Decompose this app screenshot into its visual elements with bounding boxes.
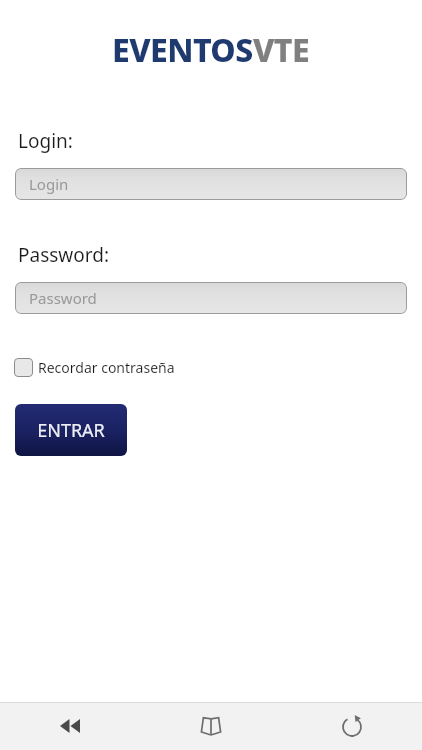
staticText: Login: — [18, 128, 73, 154]
staticText: Password — [29, 288, 97, 308]
staticText: Recordar contraseña — [38, 358, 175, 377]
button[interactable]: Recordar contraseña — [14, 358, 175, 377]
staticText: EVENTOS — [112, 28, 253, 72]
button[interactable]: Login — [15, 168, 407, 200]
staticText: ENTRAR — [37, 418, 105, 443]
button[interactable]: ENTRAR — [15, 404, 127, 456]
staticText: VTE — [253, 28, 310, 72]
staticText: Password: — [18, 242, 110, 268]
button[interactable]: Back — [0, 702, 140, 750]
button[interactable]: Bookmarks — [140, 702, 281, 750]
staticText: Login — [29, 174, 69, 194]
button[interactable]: Reload — [281, 702, 422, 750]
button[interactable]: Password — [15, 282, 407, 314]
